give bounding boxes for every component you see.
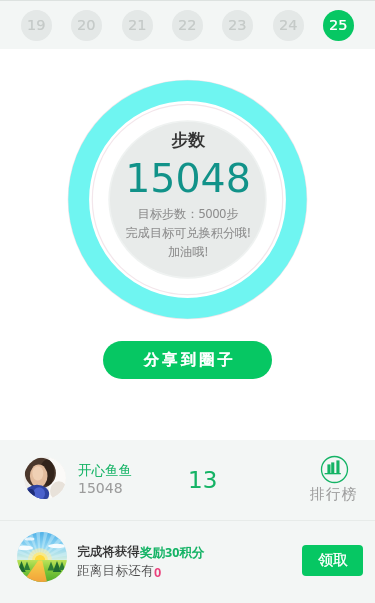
staticText: 23 xyxy=(228,17,247,34)
staticText: 0 xyxy=(154,563,162,580)
staticText: 20 xyxy=(77,17,96,34)
button[interactable]: 23 xyxy=(222,10,253,41)
staticText: 分享到圈子 xyxy=(142,351,234,370)
staticText: 19 xyxy=(27,17,46,34)
button[interactable]: 25 xyxy=(323,10,354,41)
staticText: 排行榜 xyxy=(310,485,358,503)
staticText: 24 xyxy=(279,17,298,34)
button[interactable]: 22 xyxy=(172,10,203,41)
staticText: 21 xyxy=(128,17,147,34)
staticText: 25 xyxy=(329,17,348,34)
staticText: 完成将获得 xyxy=(77,544,140,560)
button[interactable]: 排行榜 xyxy=(306,456,362,503)
staticText: 奖励30积分 xyxy=(140,544,205,561)
button[interactable]: 24 xyxy=(273,10,304,41)
button[interactable]: 21 xyxy=(122,10,153,41)
staticText: 目标步数：5000步 xyxy=(137,205,239,222)
staticText: 13 xyxy=(188,467,218,494)
button[interactable]: 领取 xyxy=(302,545,363,576)
button[interactable]: 20 xyxy=(71,10,102,41)
staticText: 完成目标可兑换积分哦! xyxy=(125,224,251,241)
staticText: 加油哦! xyxy=(168,243,208,260)
staticText: 15048 xyxy=(125,155,251,201)
button[interactable]: 分享到圈子 xyxy=(103,341,272,379)
staticText: 距离目标还有 xyxy=(77,563,154,579)
staticText: 步数 xyxy=(171,130,205,151)
staticText: 22 xyxy=(178,17,197,34)
button[interactable]: 开心鱼鱼 xyxy=(0,440,375,520)
staticText: 领取 xyxy=(318,551,348,570)
staticText: 15048 xyxy=(78,480,123,496)
staticText: 开心鱼鱼 xyxy=(78,462,132,479)
button[interactable]: 19 xyxy=(21,10,52,41)
